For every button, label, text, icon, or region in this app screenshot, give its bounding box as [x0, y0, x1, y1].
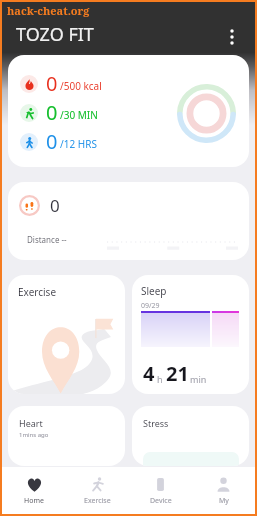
staticText: 0 — [46, 99, 58, 126]
staticText: 0 — [50, 194, 60, 217]
staticText: TOZO FIT — [16, 22, 94, 47]
button[interactable]: 0 — [8, 182, 249, 260]
staticText: 0 — [46, 70, 58, 97]
staticText: min — [190, 373, 207, 385]
button[interactable]: My — [192, 467, 255, 514]
staticText: 09/29 — [141, 301, 160, 311]
staticText: Stress — [143, 417, 169, 429]
staticText: Home — [24, 496, 44, 506]
button[interactable]: Stress — [132, 406, 249, 466]
button[interactable]: Exercise — [8, 275, 125, 394]
button[interactable]: Exercise — [66, 467, 129, 514]
button[interactable]: 0 — [8, 55, 249, 167]
staticText: 0 — [46, 128, 58, 155]
staticText: 4 — [143, 360, 155, 387]
staticText: 1mins ago — [19, 431, 49, 439]
staticText: Device — [150, 496, 172, 506]
staticText: hack-cheat.org — [7, 3, 90, 18]
button[interactable]: More options — [219, 24, 245, 50]
staticText: h — [157, 373, 163, 385]
staticText: Sleep — [141, 284, 167, 298]
staticText: Distance -- — [27, 234, 67, 245]
staticText: Exercise — [84, 496, 111, 506]
button[interactable]: Sleep — [132, 275, 249, 394]
staticText: My — [219, 496, 229, 506]
staticText: /30 MIN — [60, 108, 98, 122]
staticText: /500 kcal — [60, 79, 102, 93]
button[interactable]: Device — [129, 467, 192, 514]
button[interactable]: Heart — [8, 406, 125, 466]
button[interactable]: Home — [2, 467, 66, 514]
staticText: Heart — [19, 417, 43, 429]
staticText: Exercise — [18, 285, 57, 299]
staticText: /12 HRS — [60, 137, 97, 151]
staticText: 21 — [166, 360, 189, 387]
